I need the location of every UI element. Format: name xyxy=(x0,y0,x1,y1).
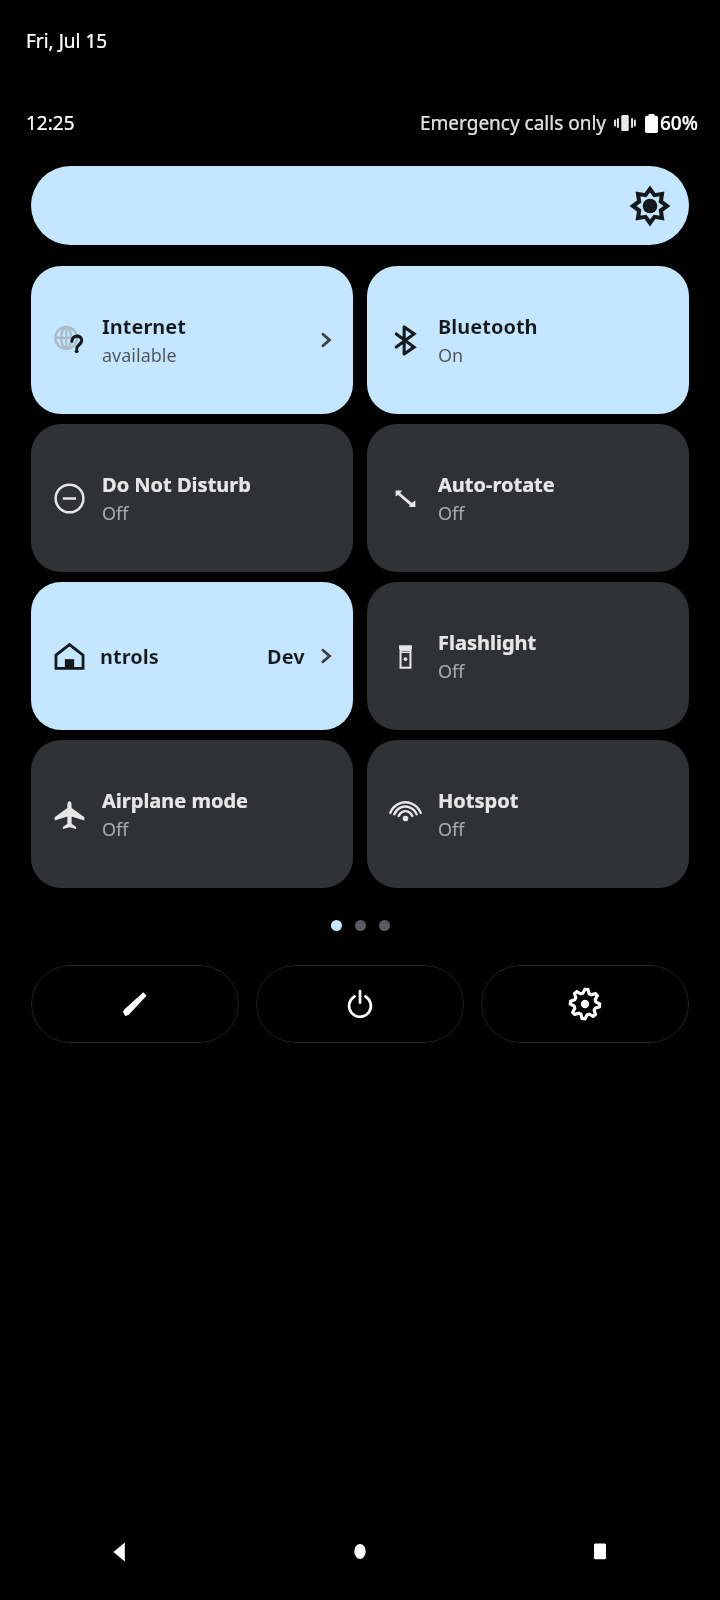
button[interactable]: Airplane mode xyxy=(31,740,353,888)
button[interactable]: Bluetooth xyxy=(367,266,689,414)
staticText: Auto-rotate xyxy=(438,471,555,498)
staticText: Off xyxy=(438,817,465,842)
staticText: Off xyxy=(438,501,465,526)
button[interactable]: Brightness xyxy=(31,166,689,245)
staticText: Dev xyxy=(267,643,305,670)
button[interactable]: Flashlight xyxy=(367,582,689,730)
staticText: Internet xyxy=(102,313,186,340)
staticText: Hotspot xyxy=(438,787,519,814)
button[interactable]: Settings xyxy=(481,965,689,1043)
staticText: Fri, Jul 15 xyxy=(26,28,108,54)
button[interactable]: Power xyxy=(256,965,464,1043)
button[interactable]: Recents xyxy=(480,1504,720,1600)
staticText: Flashlight xyxy=(438,629,537,656)
button[interactable]: Do Not Disturb xyxy=(31,424,353,572)
staticText: Off xyxy=(102,501,129,526)
staticText: On xyxy=(438,343,464,368)
staticText: Do Not Disturb xyxy=(102,471,251,498)
button[interactable]: Auto-rotate xyxy=(367,424,689,572)
staticText: Emergency calls only xyxy=(420,110,607,136)
staticText: Airplane mode xyxy=(102,787,249,814)
staticText: 12:25 xyxy=(26,110,75,136)
button[interactable]: ntrols xyxy=(31,582,353,730)
button[interactable]: Back xyxy=(0,1504,240,1600)
staticText: Off xyxy=(438,659,465,684)
staticText: Off xyxy=(102,817,129,842)
staticText: Bluetooth xyxy=(438,313,538,340)
button[interactable]: Internet xyxy=(31,266,353,414)
button[interactable]: Hotspot xyxy=(367,740,689,888)
staticText: ntrols xyxy=(100,643,159,670)
button[interactable]: Edit xyxy=(31,965,239,1043)
staticText: 60% xyxy=(660,110,698,136)
button[interactable]: Home xyxy=(240,1504,480,1600)
staticText: available xyxy=(102,343,177,368)
